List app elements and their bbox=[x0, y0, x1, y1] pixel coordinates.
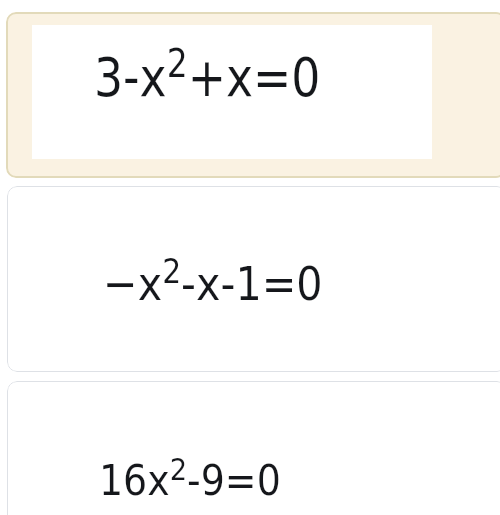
button[interactable]: 16x2-9=0 bbox=[7, 381, 500, 515]
staticText: −x2-x-1=0 bbox=[103, 252, 323, 311]
staticText: 3-x2+x=0 bbox=[94, 42, 321, 109]
button[interactable]: 3-x2+x=0 bbox=[6, 12, 500, 178]
staticText: 16x2-9=0 bbox=[99, 452, 281, 505]
button[interactable]: −x2-x-1=0 bbox=[7, 186, 500, 372]
